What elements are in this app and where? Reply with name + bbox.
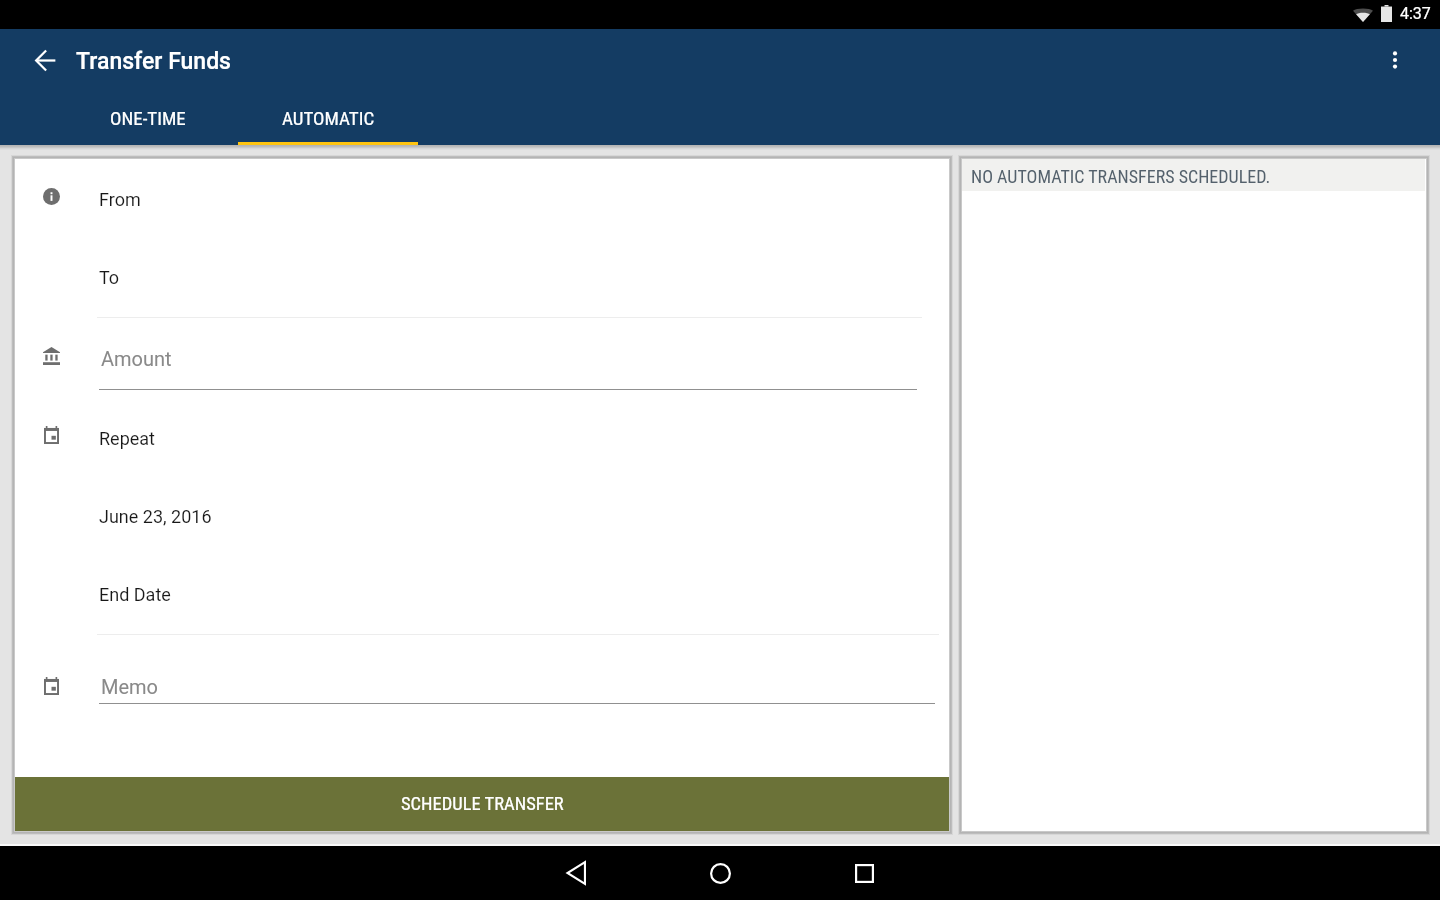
staticText: NO AUTOMATIC TRANSFERS SCHEDULED. [971,166,1271,187]
staticText: Amount [101,347,172,370]
staticText: SCHEDULE TRANSFER [401,793,564,815]
button[interactable]: Home [696,849,744,897]
button[interactable]: Memo [99,665,935,704]
button[interactable]: To [97,258,922,318]
button[interactable]: Repeat [97,419,939,479]
staticText: From [99,189,141,210]
staticText: AUTOMATIC [282,107,375,129]
button[interactable]: End Date [97,575,939,635]
staticText: June 23, 2016 [99,506,212,527]
button[interactable]: Navigate up [21,36,69,84]
button[interactable]: More options [1371,36,1419,84]
button[interactable]: Amount [99,337,917,390]
staticText: To [99,267,120,288]
staticText: Repeat [99,428,155,449]
staticText: Memo [101,675,159,698]
staticText: End Date [99,584,171,605]
staticText: ONE-TIME [110,107,186,129]
button[interactable]: Recent apps [840,849,888,897]
button[interactable]: AUTOMATIC [238,90,418,145]
button[interactable]: Back [552,849,600,897]
staticText: 4:37 [1400,4,1431,23]
button[interactable]: SCHEDULE TRANSFER [15,777,949,831]
button[interactable]: ONE-TIME [58,90,238,145]
button[interactable]: June 23, 2016 [97,497,939,557]
staticText: Transfer Funds [76,48,232,75]
button[interactable]: From [97,180,922,240]
